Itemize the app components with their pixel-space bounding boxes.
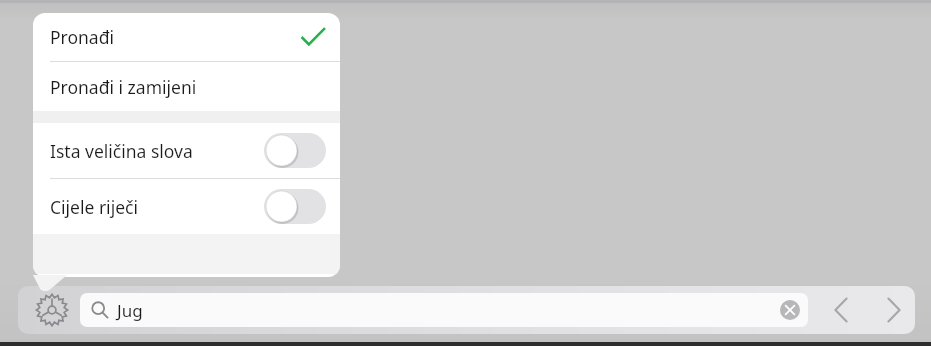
button[interactable]: Toggle bbox=[264, 189, 326, 224]
button[interactable]: Next result bbox=[869, 286, 915, 334]
button[interactable]: Toggle bbox=[264, 133, 326, 168]
staticText: Pronađi bbox=[50, 25, 114, 49]
other: Selected bbox=[300, 26, 326, 48]
staticText: Jug bbox=[117, 299, 143, 322]
button[interactable]: Search bbox=[80, 293, 808, 327]
button[interactable]: Pronađi i zamijeni bbox=[33, 62, 340, 111]
button[interactable]: Cijele riječi bbox=[33, 179, 340, 234]
other: Search bbox=[91, 301, 109, 319]
button[interactable]: Find options bbox=[28, 286, 76, 334]
button[interactable]: Pronađi bbox=[33, 13, 340, 61]
staticText: Cijele riječi bbox=[50, 195, 138, 219]
staticText: Pronađi i zamijeni bbox=[50, 75, 197, 99]
button[interactable]: Previous result bbox=[816, 286, 866, 334]
button[interactable]: Clear search bbox=[780, 300, 800, 320]
staticText: Ista veličina slova bbox=[50, 139, 193, 163]
button[interactable]: Ista veličina slova bbox=[33, 123, 340, 178]
